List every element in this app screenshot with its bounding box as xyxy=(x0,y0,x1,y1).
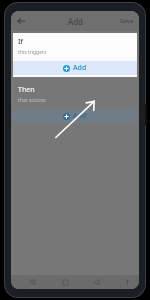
staticText: Add xyxy=(73,63,87,73)
staticText: Then xyxy=(18,85,35,95)
button[interactable]: Add xyxy=(13,109,137,123)
button[interactable]: Recents xyxy=(27,276,39,288)
staticText: Add xyxy=(31,16,120,27)
button[interactable]: Back xyxy=(11,11,31,31)
staticText: Save xyxy=(120,17,134,25)
button[interactable]: Keyboard xyxy=(121,276,133,288)
button[interactable]: Save xyxy=(120,17,134,25)
staticText: If xyxy=(18,37,23,47)
staticText: Add xyxy=(73,111,87,121)
staticText: this triggers xyxy=(18,49,47,56)
staticText: that actions xyxy=(18,97,46,104)
button[interactable]: Add xyxy=(13,61,137,75)
button[interactable]: Back xyxy=(90,276,102,288)
button[interactable]: Home xyxy=(59,276,71,288)
